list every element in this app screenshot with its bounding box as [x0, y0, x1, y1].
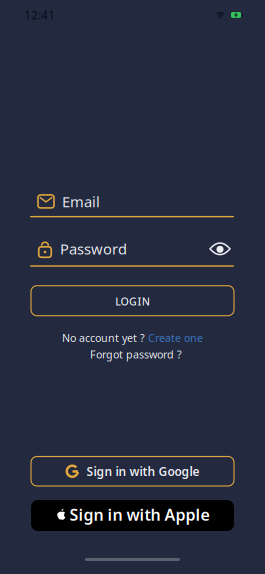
- staticText: Forgot password ?: [90, 347, 182, 362]
- staticText: No account yet ?: [62, 331, 145, 345]
- button[interactable]: Forgot password ?: [90, 347, 182, 362]
- staticText: Password: [60, 239, 127, 259]
- button[interactable]: Sign in with Apple: [31, 500, 234, 531]
- button[interactable]: Sign in with Google: [31, 456, 234, 486]
- staticText: 12:41: [24, 7, 55, 23]
- staticText: Create one: [148, 331, 203, 345]
- staticText: Sign in with Google: [86, 463, 199, 479]
- staticText: LOGIN: [115, 294, 150, 308]
- button[interactable]: No account yet ?: [62, 331, 203, 345]
- staticText: Email: [62, 192, 100, 211]
- staticText: Sign in with Apple: [69, 504, 209, 525]
- button[interactable]: LOGIN: [31, 286, 234, 316]
- button[interactable]: Show password: [209, 241, 231, 256]
